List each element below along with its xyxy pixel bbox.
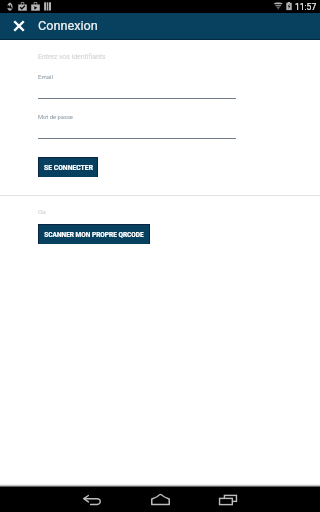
staticText: Email xyxy=(38,73,53,80)
button[interactable]: Email xyxy=(38,72,236,100)
button[interactable]: Mot de passe xyxy=(38,112,236,140)
staticText: 11:57 xyxy=(295,2,317,12)
button[interactable]: Home xyxy=(144,487,176,512)
staticText: Ou xyxy=(38,208,46,215)
staticText: SE CONNECTER xyxy=(44,164,93,172)
staticText: Mot de passe xyxy=(38,114,73,121)
staticText: Entrez vos identifiants xyxy=(38,53,106,61)
button[interactable]: SE CONNECTER xyxy=(38,157,98,177)
button[interactable]: Close xyxy=(6,13,31,40)
staticText: SCANNER MON PROPRE QRCODE xyxy=(44,231,144,239)
button[interactable]: Back xyxy=(76,487,108,512)
button[interactable]: SCANNER MON PROPRE QRCODE xyxy=(38,224,150,244)
staticText: Connexion xyxy=(38,18,98,33)
button[interactable]: Recents xyxy=(212,487,244,512)
